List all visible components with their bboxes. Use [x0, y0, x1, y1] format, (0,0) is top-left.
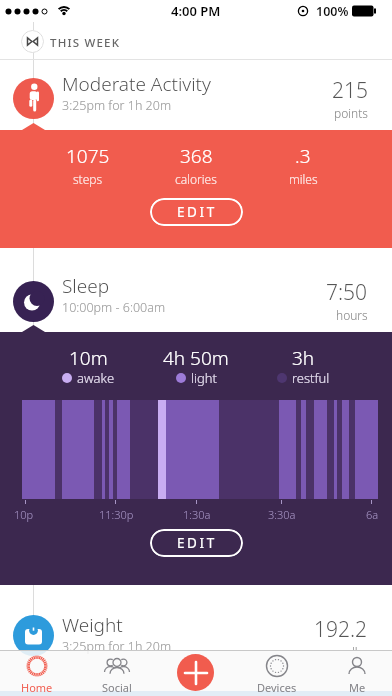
staticText: 4h 50m — [163, 345, 229, 371]
staticText: 3:30a — [268, 507, 296, 522]
staticText: Moderate Activity — [62, 71, 211, 97]
staticText: 10:00pm - 6:00am — [62, 299, 166, 316]
button[interactable]: EDIT — [150, 198, 243, 226]
staticText: 3:25pm for 1h 20m — [62, 638, 172, 655]
staticText: 100% — [316, 3, 349, 20]
staticText: 4:00 PM — [171, 2, 221, 20]
staticText: 3h — [292, 345, 315, 371]
staticText: Home — [21, 680, 53, 695]
staticText: hours — [336, 307, 368, 323]
staticText: Devices — [257, 680, 297, 695]
button[interactable]: Sleep — [0, 248, 392, 332]
staticText: Me — [349, 680, 366, 695]
button[interactable]: Moderate Activity — [0, 60, 392, 130]
button[interactable] — [21, 30, 44, 53]
staticText: miles — [289, 171, 318, 187]
button[interactable]: Me — [321, 650, 392, 696]
staticText: 192.2 — [314, 615, 368, 644]
button[interactable]: EDIT — [150, 529, 243, 557]
staticText: EDIT — [177, 534, 217, 552]
staticText: 368 — [180, 143, 213, 169]
button[interactable]: Home — [1, 650, 73, 696]
staticText: 10m — [69, 345, 108, 371]
staticText: 10p — [14, 507, 34, 522]
staticText: points — [334, 105, 368, 121]
staticText: 6a — [366, 507, 379, 522]
staticText: restful — [292, 369, 330, 387]
staticText: calories — [175, 171, 217, 187]
staticText: 11:30p — [99, 507, 134, 522]
staticText: 1:30a — [183, 507, 211, 522]
staticText: THIS WEEK — [50, 35, 121, 51]
staticText: steps — [73, 171, 103, 187]
staticText: Social — [102, 680, 132, 695]
staticText: light — [191, 369, 217, 387]
button[interactable]: Weight — [0, 585, 392, 650]
staticText: .3 — [295, 143, 311, 169]
button[interactable] — [177, 654, 214, 691]
button[interactable]: Social — [81, 650, 153, 696]
staticText: EDIT — [177, 203, 217, 221]
staticText: 7:50 — [326, 278, 368, 307]
staticText: 215 — [332, 76, 368, 105]
staticText: Sleep — [62, 273, 110, 299]
staticText: 1075 — [66, 143, 110, 169]
staticText: lbs — [352, 644, 368, 650]
staticText: 3:25pm for 1h 20m — [62, 97, 172, 114]
staticText: awake — [77, 369, 115, 387]
button[interactable]: Devices — [241, 650, 313, 696]
staticText: Weight — [62, 612, 123, 638]
